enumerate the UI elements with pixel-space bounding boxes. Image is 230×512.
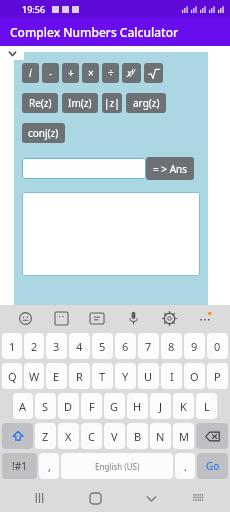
button[interactable]: U	[138, 363, 159, 389]
button[interactable]: GIF	[86, 307, 108, 329]
button[interactable]: Hide keyboard	[185, 485, 211, 511]
button[interactable]: Voice input	[122, 307, 144, 329]
button[interactable]: 1	[2, 333, 22, 359]
button[interactable]: W	[24, 363, 44, 389]
button[interactable]: D	[58, 393, 79, 419]
button[interactable]: -	[42, 63, 59, 83]
button[interactable]: P	[207, 363, 228, 389]
staticText: L	[204, 399, 210, 414]
button[interactable]: A	[13, 393, 33, 419]
button[interactable]: F	[81, 393, 102, 419]
button[interactable]: I	[161, 363, 182, 389]
button[interactable]: Go	[197, 453, 228, 479]
button[interactable]: 8	[161, 333, 182, 359]
button[interactable]: S	[35, 393, 56, 419]
staticText: T	[99, 369, 106, 384]
button[interactable]: Stickers	[50, 307, 72, 329]
staticText: A	[19, 399, 27, 414]
staticText: ÷	[108, 66, 114, 80]
button[interactable]	[22, 192, 200, 276]
button[interactable]: .	[175, 453, 195, 479]
button[interactable]: Shift	[2, 423, 33, 449]
button[interactable]: +	[62, 63, 79, 83]
button[interactable]: K	[173, 393, 194, 419]
button[interactable]: O	[184, 363, 205, 389]
button[interactable]: !#1	[2, 453, 37, 479]
button[interactable]: B	[127, 423, 148, 449]
staticText: English (US)	[95, 461, 140, 472]
staticText: Z	[42, 429, 49, 444]
button[interactable]: |z|	[102, 93, 122, 113]
button[interactable]: Re(z)	[22, 93, 58, 113]
button[interactable]: Home	[82, 485, 108, 511]
button[interactable]: Expand panel	[1, 46, 24, 60]
button[interactable]: 0	[207, 333, 228, 359]
staticText: conj(z)	[28, 126, 59, 140]
staticText: 0	[214, 339, 221, 354]
staticText: 1	[9, 339, 16, 354]
button[interactable]: J	[150, 393, 171, 419]
button[interactable]: 9	[184, 333, 205, 359]
staticText: ×	[88, 66, 94, 80]
button[interactable]: X	[58, 423, 79, 449]
staticText: 2	[31, 339, 38, 354]
button[interactable]: English (US)	[61, 453, 173, 479]
staticText: E	[53, 369, 60, 384]
button[interactable]: H	[127, 393, 148, 419]
button[interactable]: M	[173, 423, 194, 449]
button[interactable]: E	[46, 363, 67, 389]
button[interactable]: Im(z)	[62, 93, 98, 113]
button[interactable]: 3	[46, 333, 67, 359]
staticText: 5	[99, 339, 106, 354]
staticText: G	[110, 399, 119, 414]
button[interactable]: V	[104, 423, 125, 449]
staticText: U	[144, 369, 153, 384]
staticText: Re(z)	[29, 96, 52, 110]
button[interactable]: G	[104, 393, 125, 419]
button[interactable]: T	[92, 363, 113, 389]
button[interactable]: C	[81, 423, 102, 449]
button[interactable]: arg(z)	[126, 93, 166, 113]
button[interactable]: Emoji	[14, 307, 36, 329]
button[interactable]: ÷	[102, 63, 119, 83]
button[interactable]: ×	[82, 63, 99, 83]
staticText: i	[29, 66, 32, 80]
staticText: H	[133, 399, 142, 414]
staticText: N	[156, 429, 165, 444]
staticText: arg(z)	[133, 96, 160, 110]
staticText: S	[42, 399, 49, 414]
button[interactable]: 4	[69, 333, 90, 359]
button[interactable]: Z	[35, 423, 56, 449]
button[interactable]: Back	[138, 485, 164, 511]
button[interactable]: L	[196, 393, 217, 419]
staticText: O	[190, 369, 199, 384]
staticText: +	[68, 66, 74, 80]
button[interactable]: 2	[24, 333, 44, 359]
button[interactable]: conj(z)	[22, 123, 65, 143]
staticText: 7	[145, 339, 152, 354]
button[interactable]	[22, 158, 146, 179]
button[interactable]: N	[150, 423, 171, 449]
staticText: Complex Numbers Calculator	[10, 24, 179, 40]
button[interactable]: = > Ans	[146, 157, 194, 180]
button[interactable]: 5	[92, 333, 113, 359]
button[interactable]: 6	[115, 333, 136, 359]
staticText: R	[76, 369, 83, 384]
button[interactable]: R	[69, 363, 90, 389]
button[interactable]: Recents	[26, 485, 52, 511]
button[interactable]: More options	[194, 307, 216, 329]
staticText: I	[170, 369, 174, 384]
button[interactable]: Keyboard settings	[158, 307, 180, 329]
button[interactable]: x to the power of y	[122, 63, 141, 83]
button[interactable]: Y	[115, 363, 136, 389]
staticText: B	[134, 429, 142, 444]
button[interactable]: ,	[39, 453, 59, 479]
staticText: Im(z)	[68, 96, 92, 110]
button[interactable]: i	[22, 63, 39, 83]
button[interactable]: 7	[138, 333, 159, 359]
staticText: 3	[53, 339, 60, 354]
button[interactable]: Backspace	[196, 423, 228, 449]
button[interactable]: Q	[2, 363, 22, 389]
button[interactable]: Square root	[144, 63, 163, 83]
staticText: M	[179, 429, 189, 444]
